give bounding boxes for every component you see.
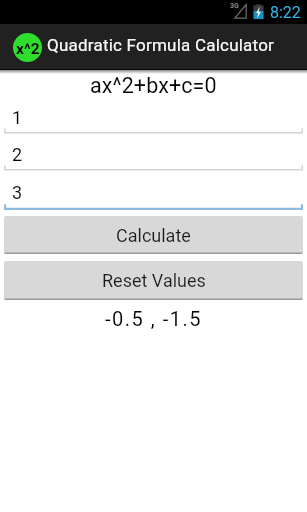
- other: Mobile signal: [234, 4, 247, 19]
- staticText: Reset Values: [102, 270, 206, 291]
- button[interactable]: Coefficient field, value 3: [0, 178, 307, 208]
- staticText: 3G: [230, 2, 239, 10]
- staticText: 8:22: [270, 3, 301, 22]
- staticText: ax^2+bx+c=0: [90, 73, 217, 98]
- button[interactable]: Quadratic Formula Calculator app icon: [13, 33, 42, 62]
- other: Battery charging: [253, 4, 264, 20]
- staticText: 1: [12, 107, 23, 128]
- staticText: Quadratic Formula Calculator: [47, 35, 275, 55]
- button[interactable]: Reset Values: [4, 261, 303, 300]
- button[interactable]: Calculate: [4, 216, 303, 254]
- staticText: 2: [12, 144, 23, 165]
- button[interactable]: Coefficient field, value 2: [0, 140, 307, 170]
- staticText: Calculate: [116, 225, 191, 246]
- staticText: x^2: [16, 40, 40, 58]
- staticText: 3: [12, 182, 23, 203]
- button[interactable]: Coefficient field, value 1: [0, 103, 307, 133]
- staticText: -0.5 , -1.5: [105, 307, 202, 330]
